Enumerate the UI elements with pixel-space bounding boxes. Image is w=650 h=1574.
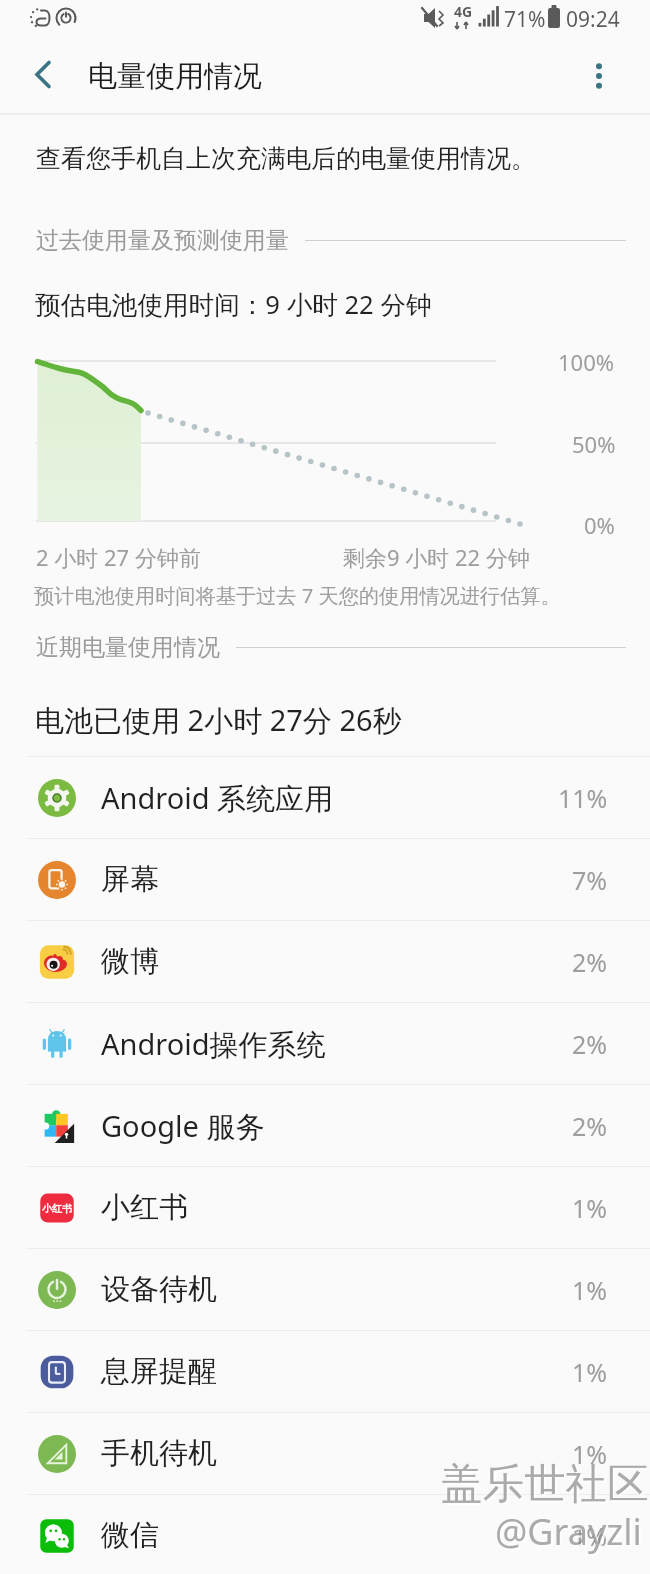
staticText: 屏幕 — [101, 861, 159, 898]
button[interactable]: 屏幕 — [0, 839, 650, 920]
staticText: 剩余9 小时 22 分钟 — [343, 542, 530, 572]
staticText: 09:24 — [566, 5, 620, 34]
button[interactable]: Google 服务 — [0, 1085, 650, 1166]
staticText: 2% — [572, 1027, 608, 1061]
staticText: 小红书 — [101, 1189, 188, 1226]
staticText: 2% — [572, 945, 608, 979]
staticText: 手机待机 — [101, 1435, 217, 1472]
staticText: 电量使用情况 — [88, 58, 262, 95]
staticText: 小红书 — [42, 1202, 72, 1215]
staticText: 息屏提醒 — [101, 1353, 217, 1390]
staticText: 过去使用量及预测使用量 — [36, 226, 289, 255]
button[interactable]: 手机待机 — [0, 1413, 650, 1494]
staticText: 微博 — [101, 943, 159, 980]
staticText: 1% — [572, 1355, 608, 1389]
staticText: 微信 — [101, 1517, 159, 1554]
staticText: Android 系统应用 — [101, 778, 334, 818]
staticText: 1% — [572, 1191, 608, 1225]
staticText: 50% — [572, 429, 616, 459]
staticText: 2 小时 27 分钟前 — [36, 542, 201, 572]
button[interactable]: Android 系统应用 — [0, 757, 650, 838]
button[interactable]: Android操作系统 — [0, 1003, 650, 1084]
staticText: 盖乐世社区 — [441, 1458, 649, 1510]
button[interactable]: 设备待机 — [0, 1249, 650, 1330]
button[interactable]: 微信 — [0, 1495, 650, 1574]
staticText: 2% — [572, 1109, 608, 1143]
staticText: 查看您手机自上次充满电后的电量使用情况。 — [36, 143, 536, 174]
staticText: Google 服务 — [101, 1106, 265, 1146]
button[interactable]: 小红书 — [0, 1167, 650, 1248]
staticText: 近期电量使用情况 — [36, 633, 220, 662]
staticText: Android操作系统 — [101, 1024, 326, 1064]
staticText: 100% — [558, 347, 615, 377]
staticText: 盖乐世社区 — [443, 1460, 650, 1512]
staticText: 1% — [572, 1273, 608, 1307]
button[interactable]: 微博 — [0, 921, 650, 1002]
button[interactable]: Back — [15, 46, 71, 102]
button[interactable]: 息屏提醒 — [0, 1331, 650, 1412]
staticText: @Grayzli — [495, 1507, 642, 1556]
staticText: 0% — [584, 510, 615, 540]
staticText: 预估电池使用时间：9 小时 22 分钟 — [35, 287, 432, 322]
staticText: 预计电池使用时间将基于过去 7 天您的使用情况进行估算。 — [34, 581, 561, 609]
staticText: 7% — [572, 863, 608, 897]
staticText: 设备待机 — [101, 1271, 217, 1308]
button[interactable]: More options — [571, 48, 627, 104]
staticText: 1% — [572, 1437, 608, 1471]
staticText: 11% — [558, 781, 608, 815]
staticText: 4G — [454, 2, 473, 21]
staticText: 71% — [504, 5, 546, 34]
staticText: @Grayzli — [497, 1509, 644, 1558]
staticText: 电池已使用 2小时 27分 26秒 — [35, 700, 402, 740]
staticText: 1% — [572, 1519, 608, 1553]
